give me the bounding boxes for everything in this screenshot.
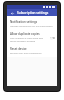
staticText: Notification settings [10,20,38,24]
button[interactable]: Navigate up [9,10,15,16]
staticText: Reset device [10,47,27,51]
button[interactable]: Toggle allow duplicate copies [49,36,55,40]
staticText: Restore your prior preferences [10,52,42,55]
button[interactable]: Reset device [7,45,57,57]
staticText: Only available if subscribed with device… [10,37,48,43]
staticText: Allow duplicate copies [10,32,40,36]
button[interactable]: Notification settings [7,18,57,30]
button[interactable]: Allow duplicate copies [7,30,57,45]
staticText: Subscription settings [17,11,49,15]
staticText: Manage notifications for this subscripti… [10,25,53,28]
